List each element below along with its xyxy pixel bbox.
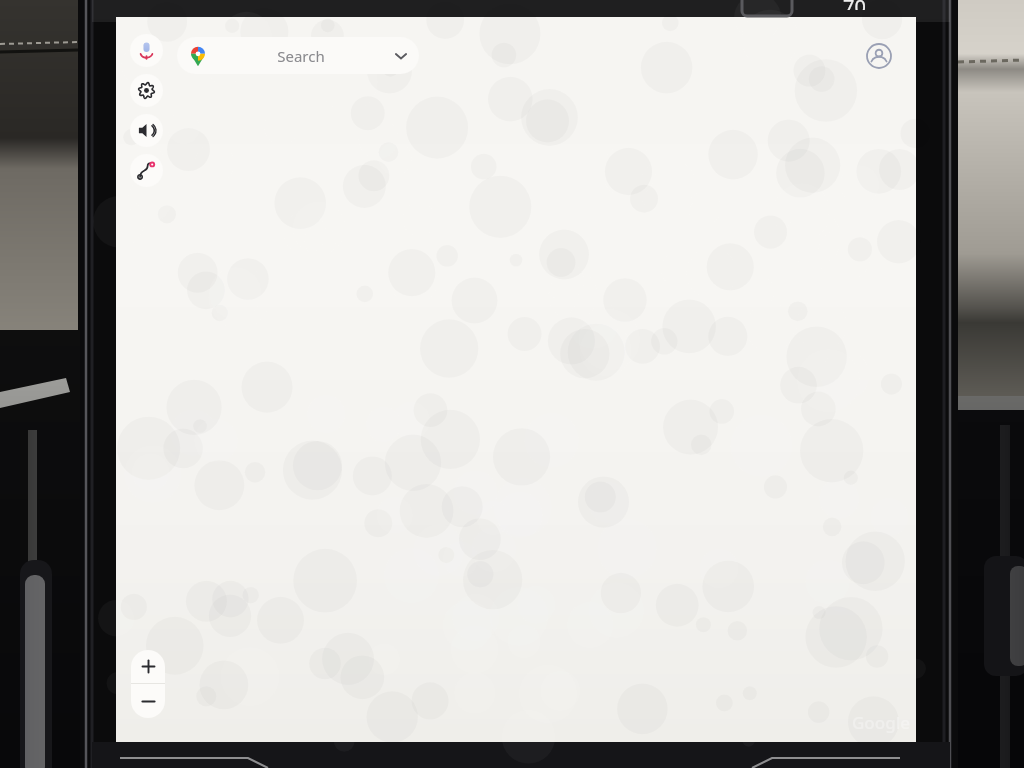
staticText: Google — [852, 711, 911, 734]
button[interactable]: Search — [177, 37, 419, 74]
button[interactable]: Settings — [130, 74, 163, 107]
button[interactable]: Account — [864, 41, 894, 71]
button[interactable]: Navigation — [130, 154, 163, 187]
button[interactable]: Voice search — [130, 34, 163, 67]
staticText: 70 — [843, 0, 866, 10]
staticText: Search — [209, 46, 393, 66]
button[interactable]: Sound — [130, 114, 163, 147]
button[interactable]: Zoom out — [131, 684, 165, 718]
button[interactable]: Zoom in — [131, 650, 165, 683]
